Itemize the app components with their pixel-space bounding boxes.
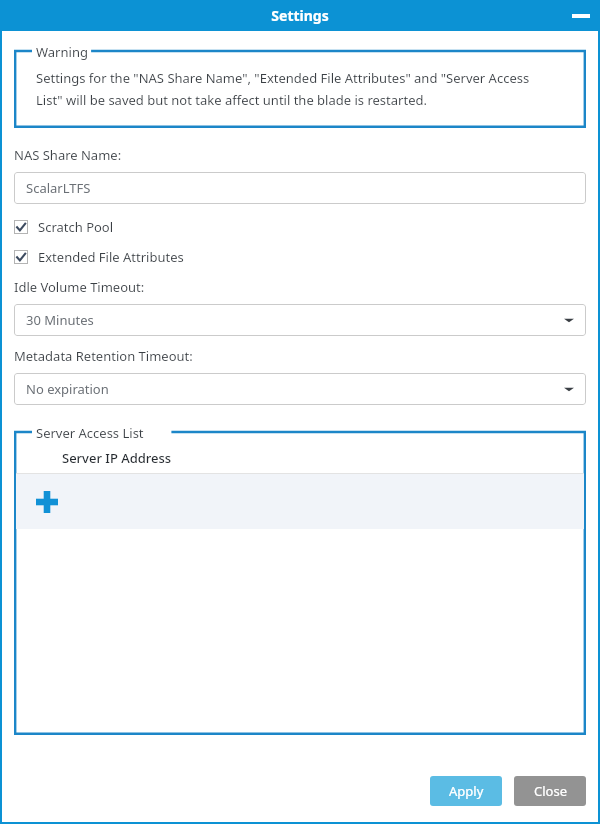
staticText: Metadata Retention Timeout: (14, 347, 193, 365)
staticText: Server Access List (36, 424, 144, 442)
staticText: Settings for the "NAS Share Name", "Exte… (36, 69, 530, 87)
staticText: Scratch Pool (38, 218, 114, 236)
button[interactable]: Minimize (568, 3, 594, 29)
button[interactable]: Apply (430, 776, 502, 806)
staticText: Extended File Attributes (38, 248, 184, 266)
staticText: List" will be saved but not take affect … (36, 91, 427, 109)
staticText: Close (534, 782, 567, 800)
staticText: Server IP Address (62, 449, 172, 467)
staticText: 30 Minutes (26, 311, 564, 329)
button[interactable]: Scratch Pool (14, 212, 586, 242)
button[interactable]: Close (514, 776, 586, 806)
button[interactable]: Extended File Attributes (14, 242, 586, 272)
staticText: ScalarLTFS (26, 179, 574, 197)
button[interactable]: Add server (16, 474, 584, 529)
button[interactable]: No expiration (14, 373, 586, 405)
staticText: NAS Share Name: (14, 146, 122, 164)
staticText: Idle Volume Timeout: (14, 278, 145, 296)
staticText: No expiration (26, 380, 564, 398)
button[interactable]: 30 Minutes (14, 304, 586, 336)
staticText: Apply (449, 782, 484, 800)
button[interactable]: ScalarLTFS (14, 172, 586, 204)
staticText: Warning (36, 43, 88, 61)
staticText: Settings (0, 6, 600, 25)
